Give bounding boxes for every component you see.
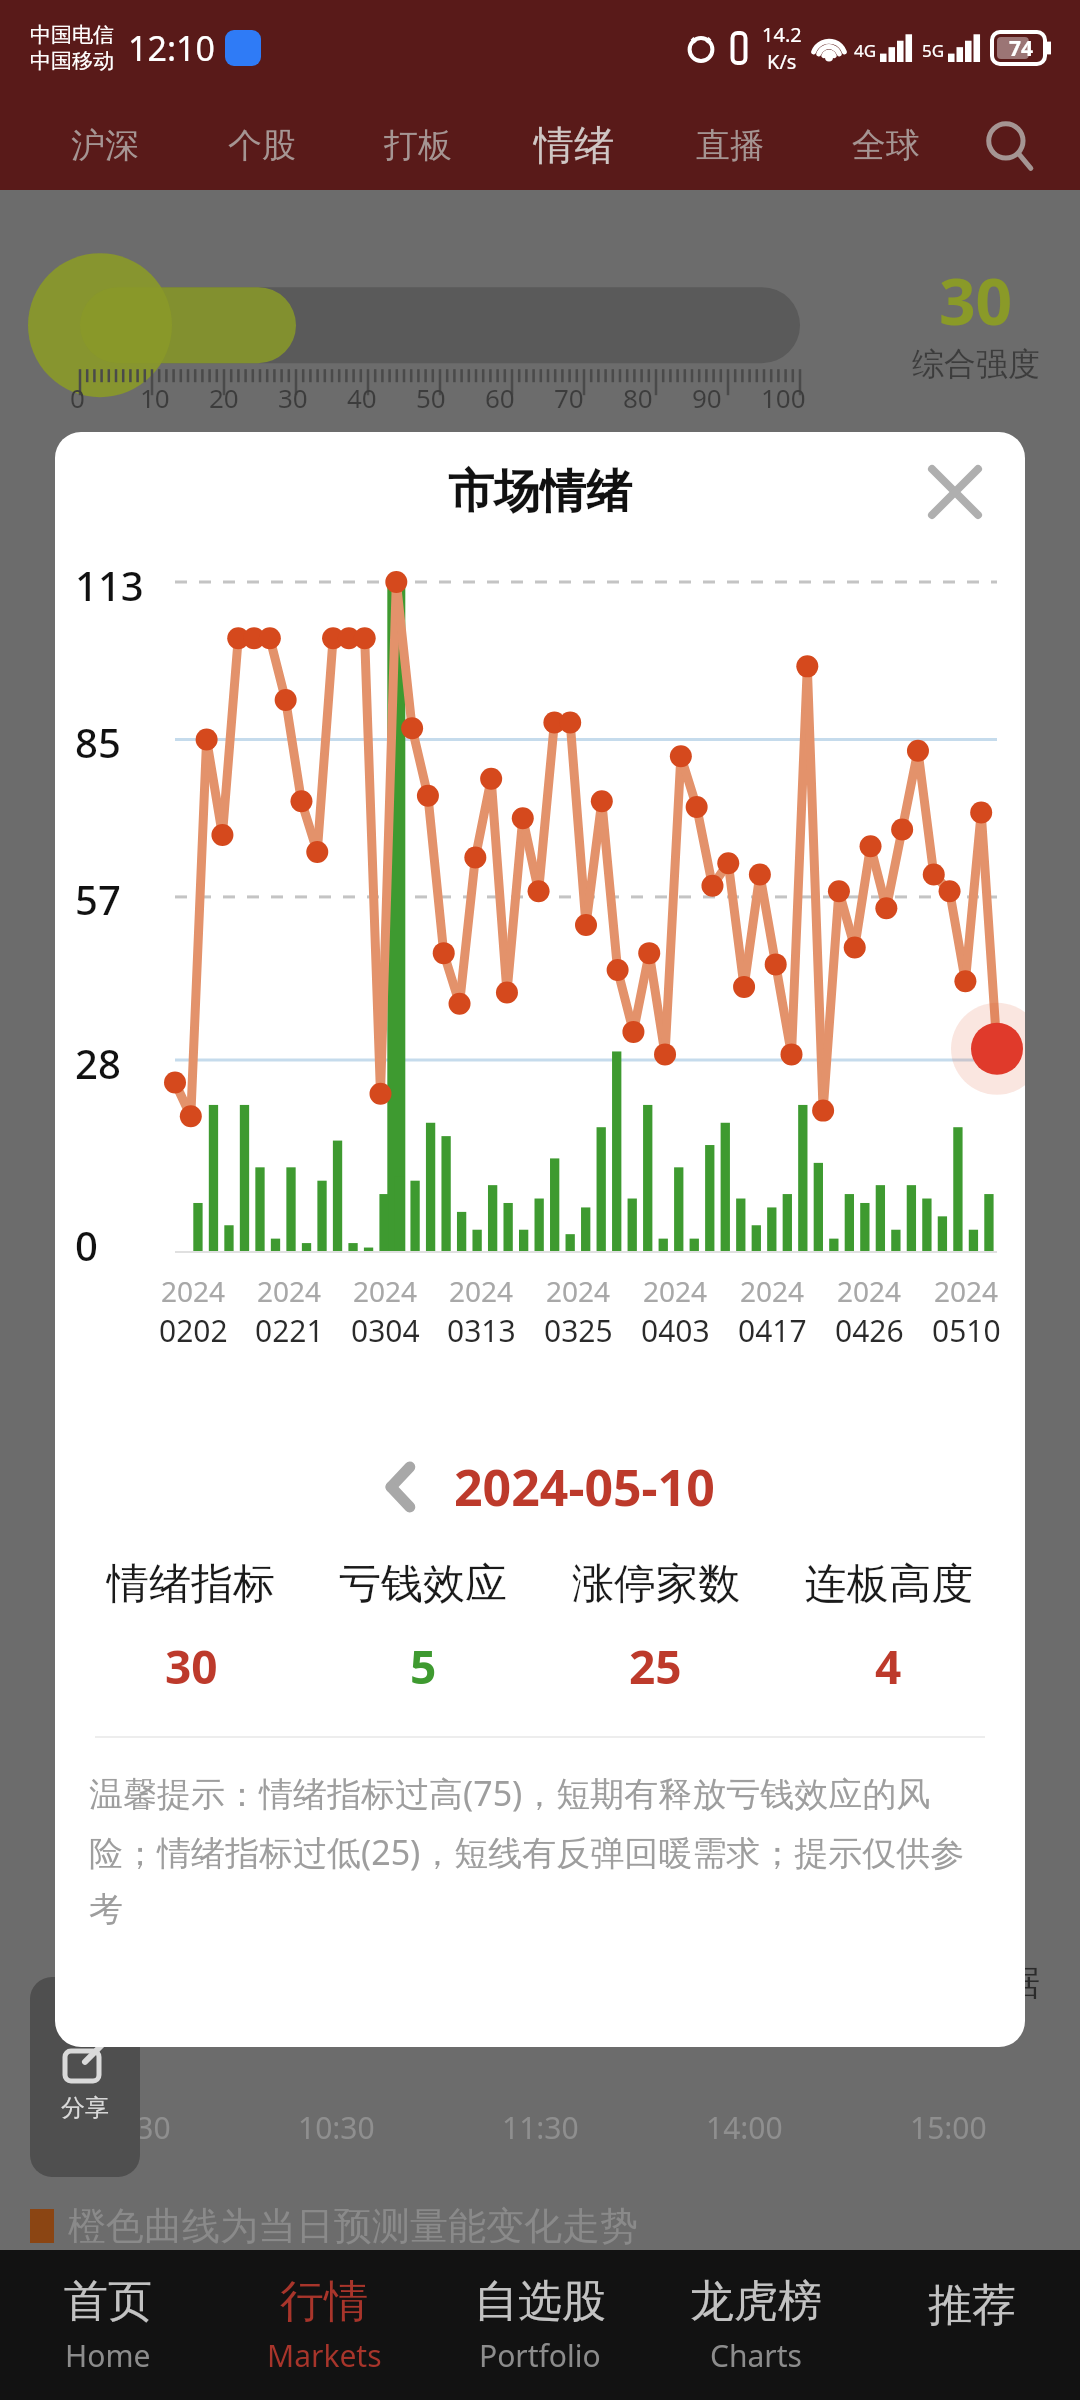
staticText: 涨停家数: [572, 1558, 740, 1611]
staticText: 40: [347, 380, 377, 415]
staticText: 5G: [922, 39, 945, 62]
staticText: 全球: [852, 124, 920, 167]
staticText: 2024: [161, 1272, 226, 1310]
staticText: 11:30: [502, 2107, 579, 2148]
staticText: 2024: [837, 1272, 902, 1310]
staticText: 橙色曲线为当日预测量能变化走势: [68, 2202, 638, 2250]
staticText: 连板高度: [805, 1558, 973, 1611]
staticText: 0: [75, 1218, 98, 1272]
staticText: 0417: [738, 1310, 807, 1351]
staticText: 行情: [280, 2274, 368, 2329]
staticText: 打板: [384, 124, 452, 167]
staticText: 0403: [641, 1310, 710, 1351]
button[interactable]: 亏钱效应: [307, 1558, 539, 1698]
staticText: 20: [209, 380, 239, 415]
staticText: 14.2: [762, 21, 802, 48]
staticText: 自选股: [474, 2274, 606, 2329]
staticText: 温馨提示：情绪指标过高(75)，短期有释放亏钱效应的风险；情绪指标过低(25)，…: [89, 1770, 991, 1931]
staticText: 2024: [257, 1272, 322, 1310]
staticText: 0325: [544, 1310, 613, 1351]
staticText: 2024: [353, 1272, 418, 1310]
button[interactable]: 情绪指标: [75, 1558, 307, 1698]
staticText: 0202: [159, 1310, 228, 1351]
staticText: 80: [623, 380, 653, 415]
staticText: 情绪: [534, 120, 614, 170]
staticText: 推荐: [928, 2278, 1016, 2333]
staticText: 0313: [447, 1310, 516, 1351]
staticText: Charts: [710, 2335, 802, 2376]
staticText: 30: [939, 257, 1013, 344]
staticText: 25: [629, 1635, 682, 1698]
button[interactable]: Previous day: [366, 1452, 436, 1522]
staticText: 10:30: [298, 2107, 375, 2148]
staticText: 14:00: [706, 2107, 783, 2148]
button[interactable]: 全球: [808, 100, 964, 190]
button[interactable]: 自选股: [432, 2250, 648, 2400]
staticText: 分享: [61, 2093, 109, 2123]
staticText: 历史数据: [896, 1960, 1040, 2005]
button[interactable]: 首页: [0, 2250, 216, 2400]
staticText: 10: [140, 380, 170, 415]
staticText: 市场情绪: [448, 463, 632, 521]
staticText: 2024-05-10: [454, 1453, 715, 1521]
staticText: 70: [554, 380, 584, 415]
staticText: 100: [761, 380, 806, 415]
button[interactable]: 个股: [183, 100, 340, 190]
staticText: 直播: [696, 124, 764, 167]
staticText: 情绪指标: [107, 1558, 275, 1611]
staticText: Portfolio: [479, 2335, 601, 2376]
staticText: 4G: [854, 39, 877, 62]
staticText: 50: [416, 380, 446, 415]
staticText: 沪深: [71, 124, 139, 167]
staticText: 0510: [932, 1310, 1001, 1351]
button[interactable]: 情绪: [496, 100, 652, 190]
staticText: 亏钱效应: [339, 1558, 507, 1611]
staticText: 个股: [228, 124, 296, 167]
staticText: 中国电信: [30, 22, 114, 48]
button[interactable]: 打板: [340, 100, 496, 190]
staticText: 60: [485, 380, 515, 415]
staticText: 0426: [835, 1310, 904, 1351]
staticText: 首页: [64, 2274, 152, 2329]
button[interactable]: 涨停家数: [539, 1558, 772, 1698]
staticText: 2024: [643, 1272, 708, 1310]
staticText: 0304: [351, 1310, 420, 1351]
button[interactable]: 龙虎榜: [648, 2250, 864, 2400]
button[interactable]: Search: [964, 100, 1054, 190]
button[interactable]: 沪深: [26, 100, 183, 190]
button[interactable]: 连板高度: [772, 1558, 1005, 1698]
button[interactable]: 行情: [216, 2250, 432, 2400]
staticText: 综合强度: [912, 344, 1040, 384]
staticText: 30: [165, 1635, 218, 1698]
staticText: 113: [75, 558, 144, 612]
staticText: 0221: [255, 1310, 324, 1351]
staticText: 4: [875, 1635, 902, 1698]
staticText: 15:00: [910, 2107, 987, 2148]
staticText: 龙虎榜: [690, 2274, 822, 2329]
staticText: 0: [70, 380, 85, 415]
staticText: 2024: [740, 1272, 805, 1310]
staticText: 中国移动: [30, 48, 114, 74]
button[interactable]: 分享: [30, 1977, 140, 2177]
staticText: 74: [1009, 34, 1034, 63]
staticText: 12:10: [128, 25, 215, 71]
staticText: Markets: [267, 2335, 382, 2376]
button[interactable]: 直播: [652, 100, 808, 190]
button[interactable]: 推荐: [864, 2250, 1080, 2400]
staticText: 85: [75, 715, 121, 769]
staticText: 30: [278, 380, 308, 415]
staticText: 2024: [546, 1272, 611, 1310]
staticText: 2024: [449, 1272, 514, 1310]
staticText: 5: [410, 1635, 437, 1698]
staticText: 57: [75, 872, 121, 926]
button[interactable]: Close: [915, 452, 995, 532]
staticText: 2024: [934, 1272, 999, 1310]
staticText: 28: [75, 1036, 121, 1090]
staticText: Home: [65, 2335, 151, 2376]
staticText: 09:30: [94, 2107, 171, 2148]
staticText: 90: [692, 380, 722, 415]
staticText: K/s: [767, 48, 797, 75]
